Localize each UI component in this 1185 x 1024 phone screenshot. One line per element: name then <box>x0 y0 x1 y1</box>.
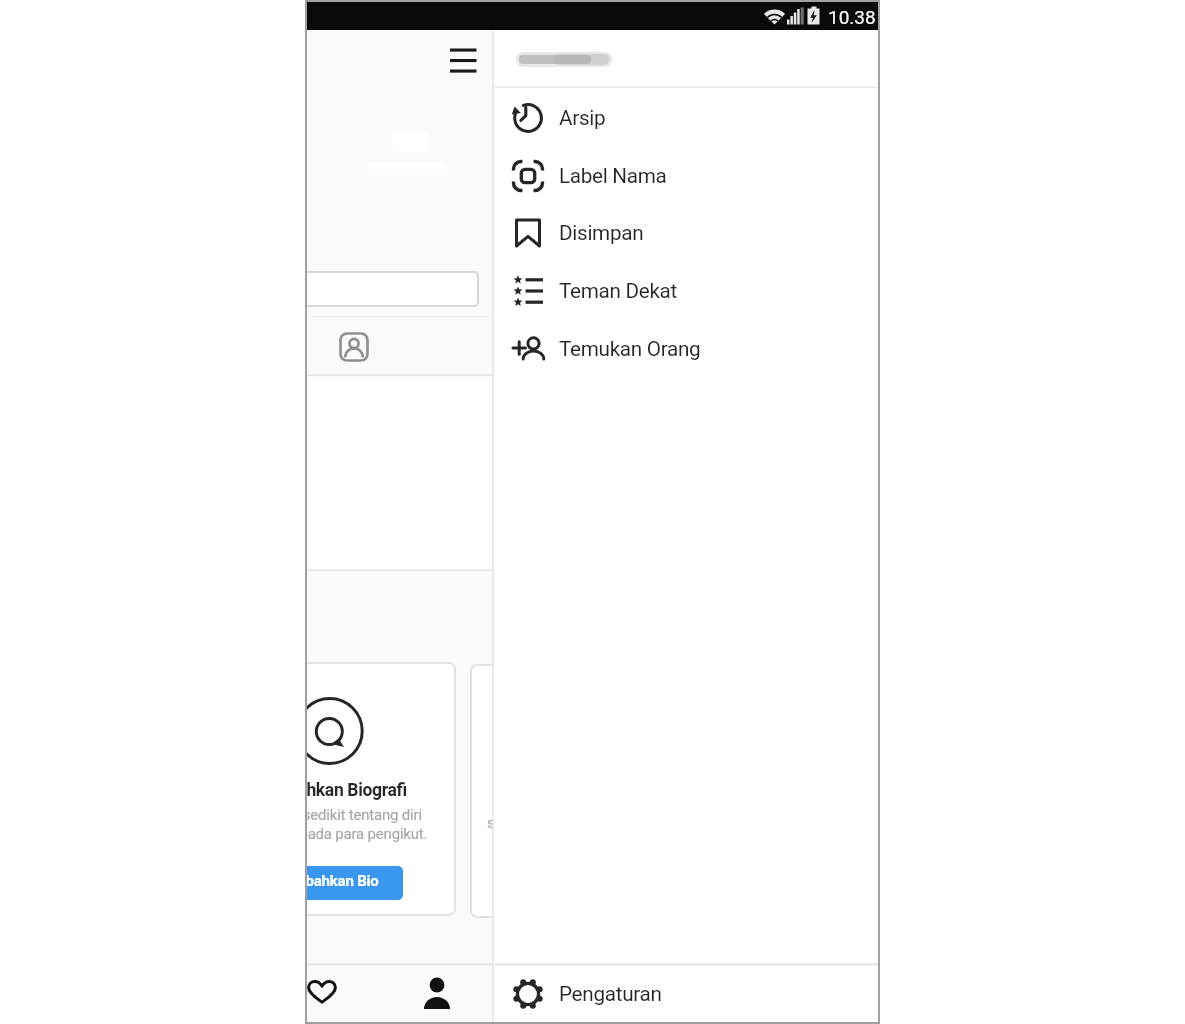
button[interactable]: Tambahkan Bio <box>307 866 403 900</box>
button[interactable]: Pengaturan <box>494 965 878 1022</box>
staticText: s <box>487 814 495 832</box>
staticText: Teman Dekat <box>559 279 678 303</box>
button[interactable] <box>438 36 488 82</box>
button[interactable] <box>337 330 371 364</box>
button[interactable] <box>419 972 455 1016</box>
staticText: Disimpan <box>559 221 644 245</box>
button[interactable] <box>307 975 340 1011</box>
staticText: Tambahkan Bio <box>307 872 379 890</box>
staticText: 10.38 <box>828 6 876 28</box>
staticText: Label Nama <box>559 164 667 188</box>
button[interactable]: Temukan Orang <box>494 320 878 378</box>
button[interactable]: Teman Dekat <box>494 262 878 320</box>
button[interactable]: Arsip <box>494 89 878 147</box>
staticText: Arsip <box>559 106 606 130</box>
staticText: Pengaturan <box>559 982 662 1006</box>
button[interactable]: Label Nama <box>494 147 878 205</box>
staticText: Temukan Orang <box>559 337 701 361</box>
staticText: Bagikan sedikit tentang diri Anda kepada… <box>307 806 428 842</box>
button[interactable] <box>307 271 479 307</box>
staticText: Tambahkan Biografi <box>307 780 407 801</box>
button[interactable]: Disimpan <box>494 204 878 262</box>
